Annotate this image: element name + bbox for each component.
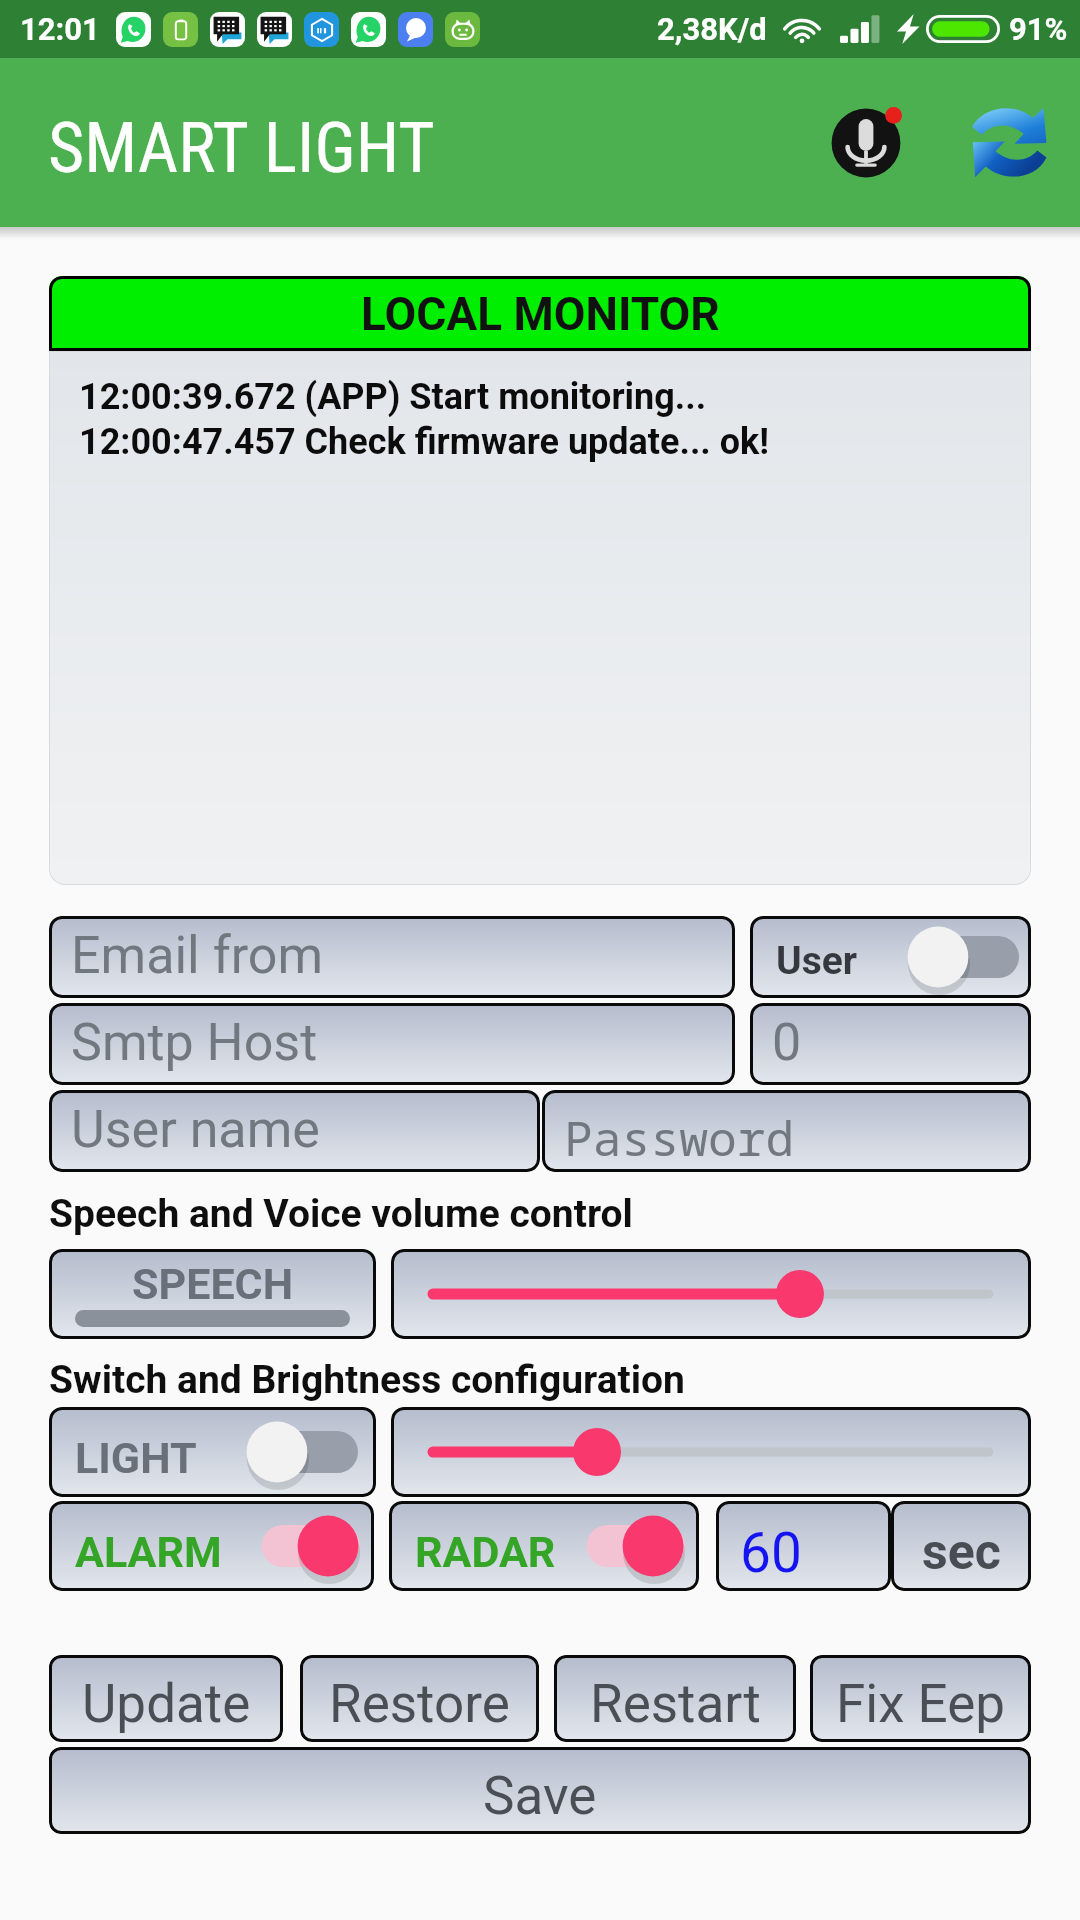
staticText: 91% (1009, 11, 1068, 47)
staticText: Restore (329, 1673, 510, 1735)
staticText: LOCAL MONITOR (361, 287, 720, 341)
button[interactable]: LOCAL MONITOR (49, 276, 1031, 351)
staticText: RADAR (415, 1527, 556, 1577)
button[interactable]: Restore (300, 1655, 539, 1742)
staticText: 0 (772, 1012, 802, 1073)
button[interactable]: 60 (716, 1501, 891, 1591)
button[interactable]: Fix Eep (810, 1655, 1031, 1742)
staticText: Password (564, 1105, 795, 1170)
staticText: LIGHT (75, 1433, 197, 1483)
staticText: 60 (740, 1521, 802, 1585)
staticText: SMART LIGHT (48, 107, 435, 189)
button[interactable]: sec (891, 1501, 1031, 1591)
staticText: ALARM (75, 1527, 222, 1577)
staticText: 12:01 (20, 11, 100, 47)
staticText: 2,38K/d (657, 11, 767, 47)
button[interactable]: RADAR (389, 1501, 699, 1591)
button[interactable]: User (750, 916, 1031, 998)
staticText: User name (71, 1099, 320, 1160)
button[interactable]: Password (542, 1090, 1031, 1172)
button[interactable]: Save (49, 1747, 1031, 1834)
button[interactable]: 0 (750, 1003, 1031, 1085)
button[interactable]: Email from (49, 916, 735, 998)
button[interactable]: User name (49, 1090, 540, 1172)
button[interactable]: LIGHT (49, 1407, 376, 1497)
button[interactable]: Restart (554, 1655, 796, 1742)
staticText: sec (922, 1523, 1001, 1582)
staticText: 12:00:39.672 (APP) Start monitoring... (79, 376, 707, 418)
button[interactable] (391, 1407, 1031, 1497)
staticText: Restart (590, 1673, 761, 1735)
button[interactable]: SPEECH (49, 1249, 376, 1339)
staticText: User (776, 938, 858, 984)
staticText: Smtp Host (71, 1012, 318, 1073)
staticText: Update (82, 1673, 251, 1735)
staticText: Save (483, 1765, 597, 1827)
button[interactable] (245, 1420, 358, 1484)
button[interactable]: Smtp Host (49, 1003, 735, 1085)
button[interactable] (572, 1514, 685, 1578)
button[interactable]: Update (49, 1655, 283, 1742)
button[interactable]: Microphone (814, 91, 918, 195)
staticText: Switch and Brightness configuration (49, 1357, 685, 1403)
button[interactable] (906, 925, 1019, 989)
staticText: 12:00:47.457 Check firmware update... ok… (79, 421, 770, 463)
staticText: Fix Eep (836, 1673, 1006, 1735)
staticText: Email from (71, 925, 324, 986)
button[interactable]: 12:00:39.672 (APP) Start monitoring... (49, 351, 1031, 885)
button[interactable] (391, 1249, 1031, 1339)
button[interactable]: Refresh (958, 91, 1062, 195)
button[interactable] (247, 1514, 360, 1578)
staticText: SPEECH (132, 1259, 294, 1309)
button[interactable]: ALARM (49, 1501, 374, 1591)
staticText: Speech and Voice volume control (49, 1191, 633, 1237)
